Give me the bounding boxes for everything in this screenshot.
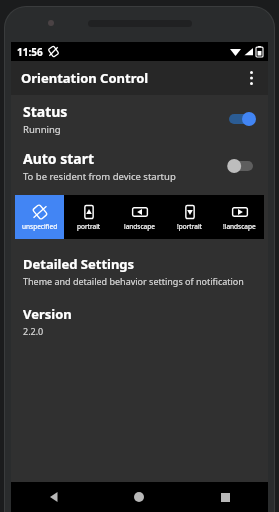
staticText: !portrait [177, 222, 202, 231]
staticText: Version [23, 305, 72, 323]
button[interactable]: portrait [64, 195, 114, 239]
button[interactable]: Home [96, 482, 182, 512]
button[interactable]: Detailed Settings [11, 249, 268, 293]
button[interactable]: Auto start [11, 142, 268, 189]
staticText: 11:56 [17, 45, 43, 59]
button[interactable]: unspecified [15, 195, 64, 239]
staticText: Running [23, 123, 61, 136]
staticText: Auto start [23, 149, 95, 168]
button[interactable]: Back [11, 482, 96, 512]
staticText: Theme and detailed behavior settings of … [23, 275, 244, 287]
button[interactable]: landscape [114, 195, 164, 239]
button[interactable]: Version [11, 299, 268, 343]
staticText: portrait [77, 222, 101, 231]
staticText: !landscape [223, 222, 256, 231]
button[interactable]: More options [234, 61, 268, 95]
button[interactable]: !portrait [164, 195, 214, 239]
staticText: Orientation Control [21, 69, 149, 87]
staticText: landscape [124, 222, 155, 231]
button[interactable]: !landscape [214, 195, 264, 239]
button[interactable]: Recent apps [182, 482, 268, 512]
staticText: unspecified [22, 222, 58, 231]
staticText: Status [23, 102, 68, 121]
button[interactable]: Status [11, 95, 268, 142]
staticText: To be resident from device startup [23, 170, 176, 183]
staticText: Detailed Settings [23, 255, 135, 273]
staticText: 2.2.0 [23, 325, 44, 337]
